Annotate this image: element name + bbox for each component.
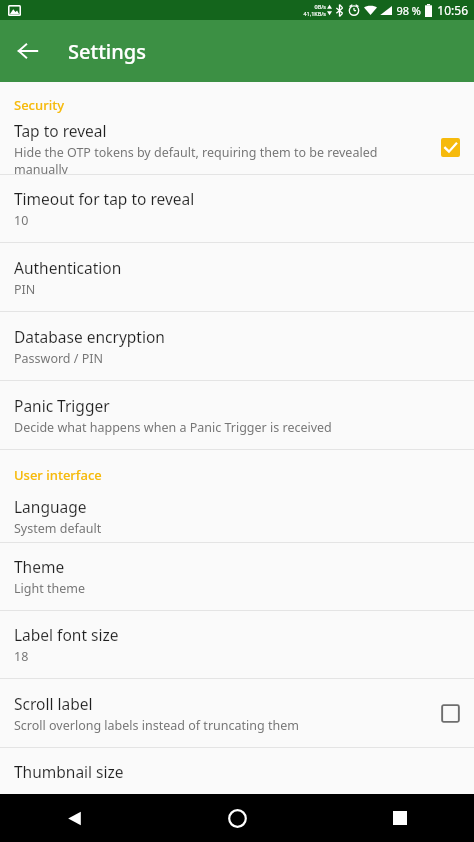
staticText: Database encryption (14, 326, 165, 347)
staticText: Panic Trigger (14, 395, 110, 416)
staticText: Thumbnail size (14, 761, 124, 782)
staticText: Security (14, 96, 64, 114)
staticText: Tap to reveal (14, 120, 107, 141)
button[interactable]: Theme (0, 543, 474, 610)
staticText: PIN (14, 281, 36, 298)
staticText: 41,1KB/s (303, 10, 326, 17)
button[interactable]: Thumbnail size (0, 748, 474, 794)
staticText: 18 (14, 648, 29, 665)
button[interactable]: Timeout for tap to reveal (0, 175, 474, 242)
button[interactable]: Database encryption (0, 312, 474, 380)
staticText: 10:56 (437, 2, 468, 18)
staticText: Hide the OTP tokens by default, requirin… (14, 144, 431, 174)
staticText: System default (14, 520, 102, 537)
button[interactable]: Panic Trigger (0, 381, 474, 449)
staticText: User interface (14, 466, 102, 484)
staticText: Authentication (14, 257, 122, 278)
staticText: Label font size (14, 624, 119, 645)
staticText: Light theme (14, 580, 85, 597)
button[interactable]: Back (52, 796, 96, 840)
button[interactable]: Authentication (0, 243, 474, 311)
button[interactable]: Home (215, 796, 259, 840)
button[interactable]: Tap to reveal (0, 120, 474, 174)
button[interactable]: Scroll label (0, 679, 474, 747)
staticText: Theme (14, 556, 65, 577)
button[interactable]: Language (0, 490, 474, 542)
staticText: Settings (68, 38, 146, 65)
staticText: Scroll label (14, 693, 93, 714)
button[interactable]: Back (8, 31, 48, 71)
staticText: Password / PIN (14, 350, 103, 367)
staticText: Decide what happens when a Panic Trigger… (14, 419, 332, 436)
staticText: Language (14, 496, 87, 517)
staticText: Timeout for tap to reveal (14, 188, 195, 209)
staticText: Scroll overlong labels instead of trunca… (14, 717, 299, 734)
button[interactable]: Label font size (0, 611, 474, 678)
staticText: 0B/s (314, 3, 326, 10)
staticText: 98 % (396, 3, 421, 18)
staticText: 10 (14, 212, 29, 229)
button[interactable]: Recents (378, 796, 422, 840)
